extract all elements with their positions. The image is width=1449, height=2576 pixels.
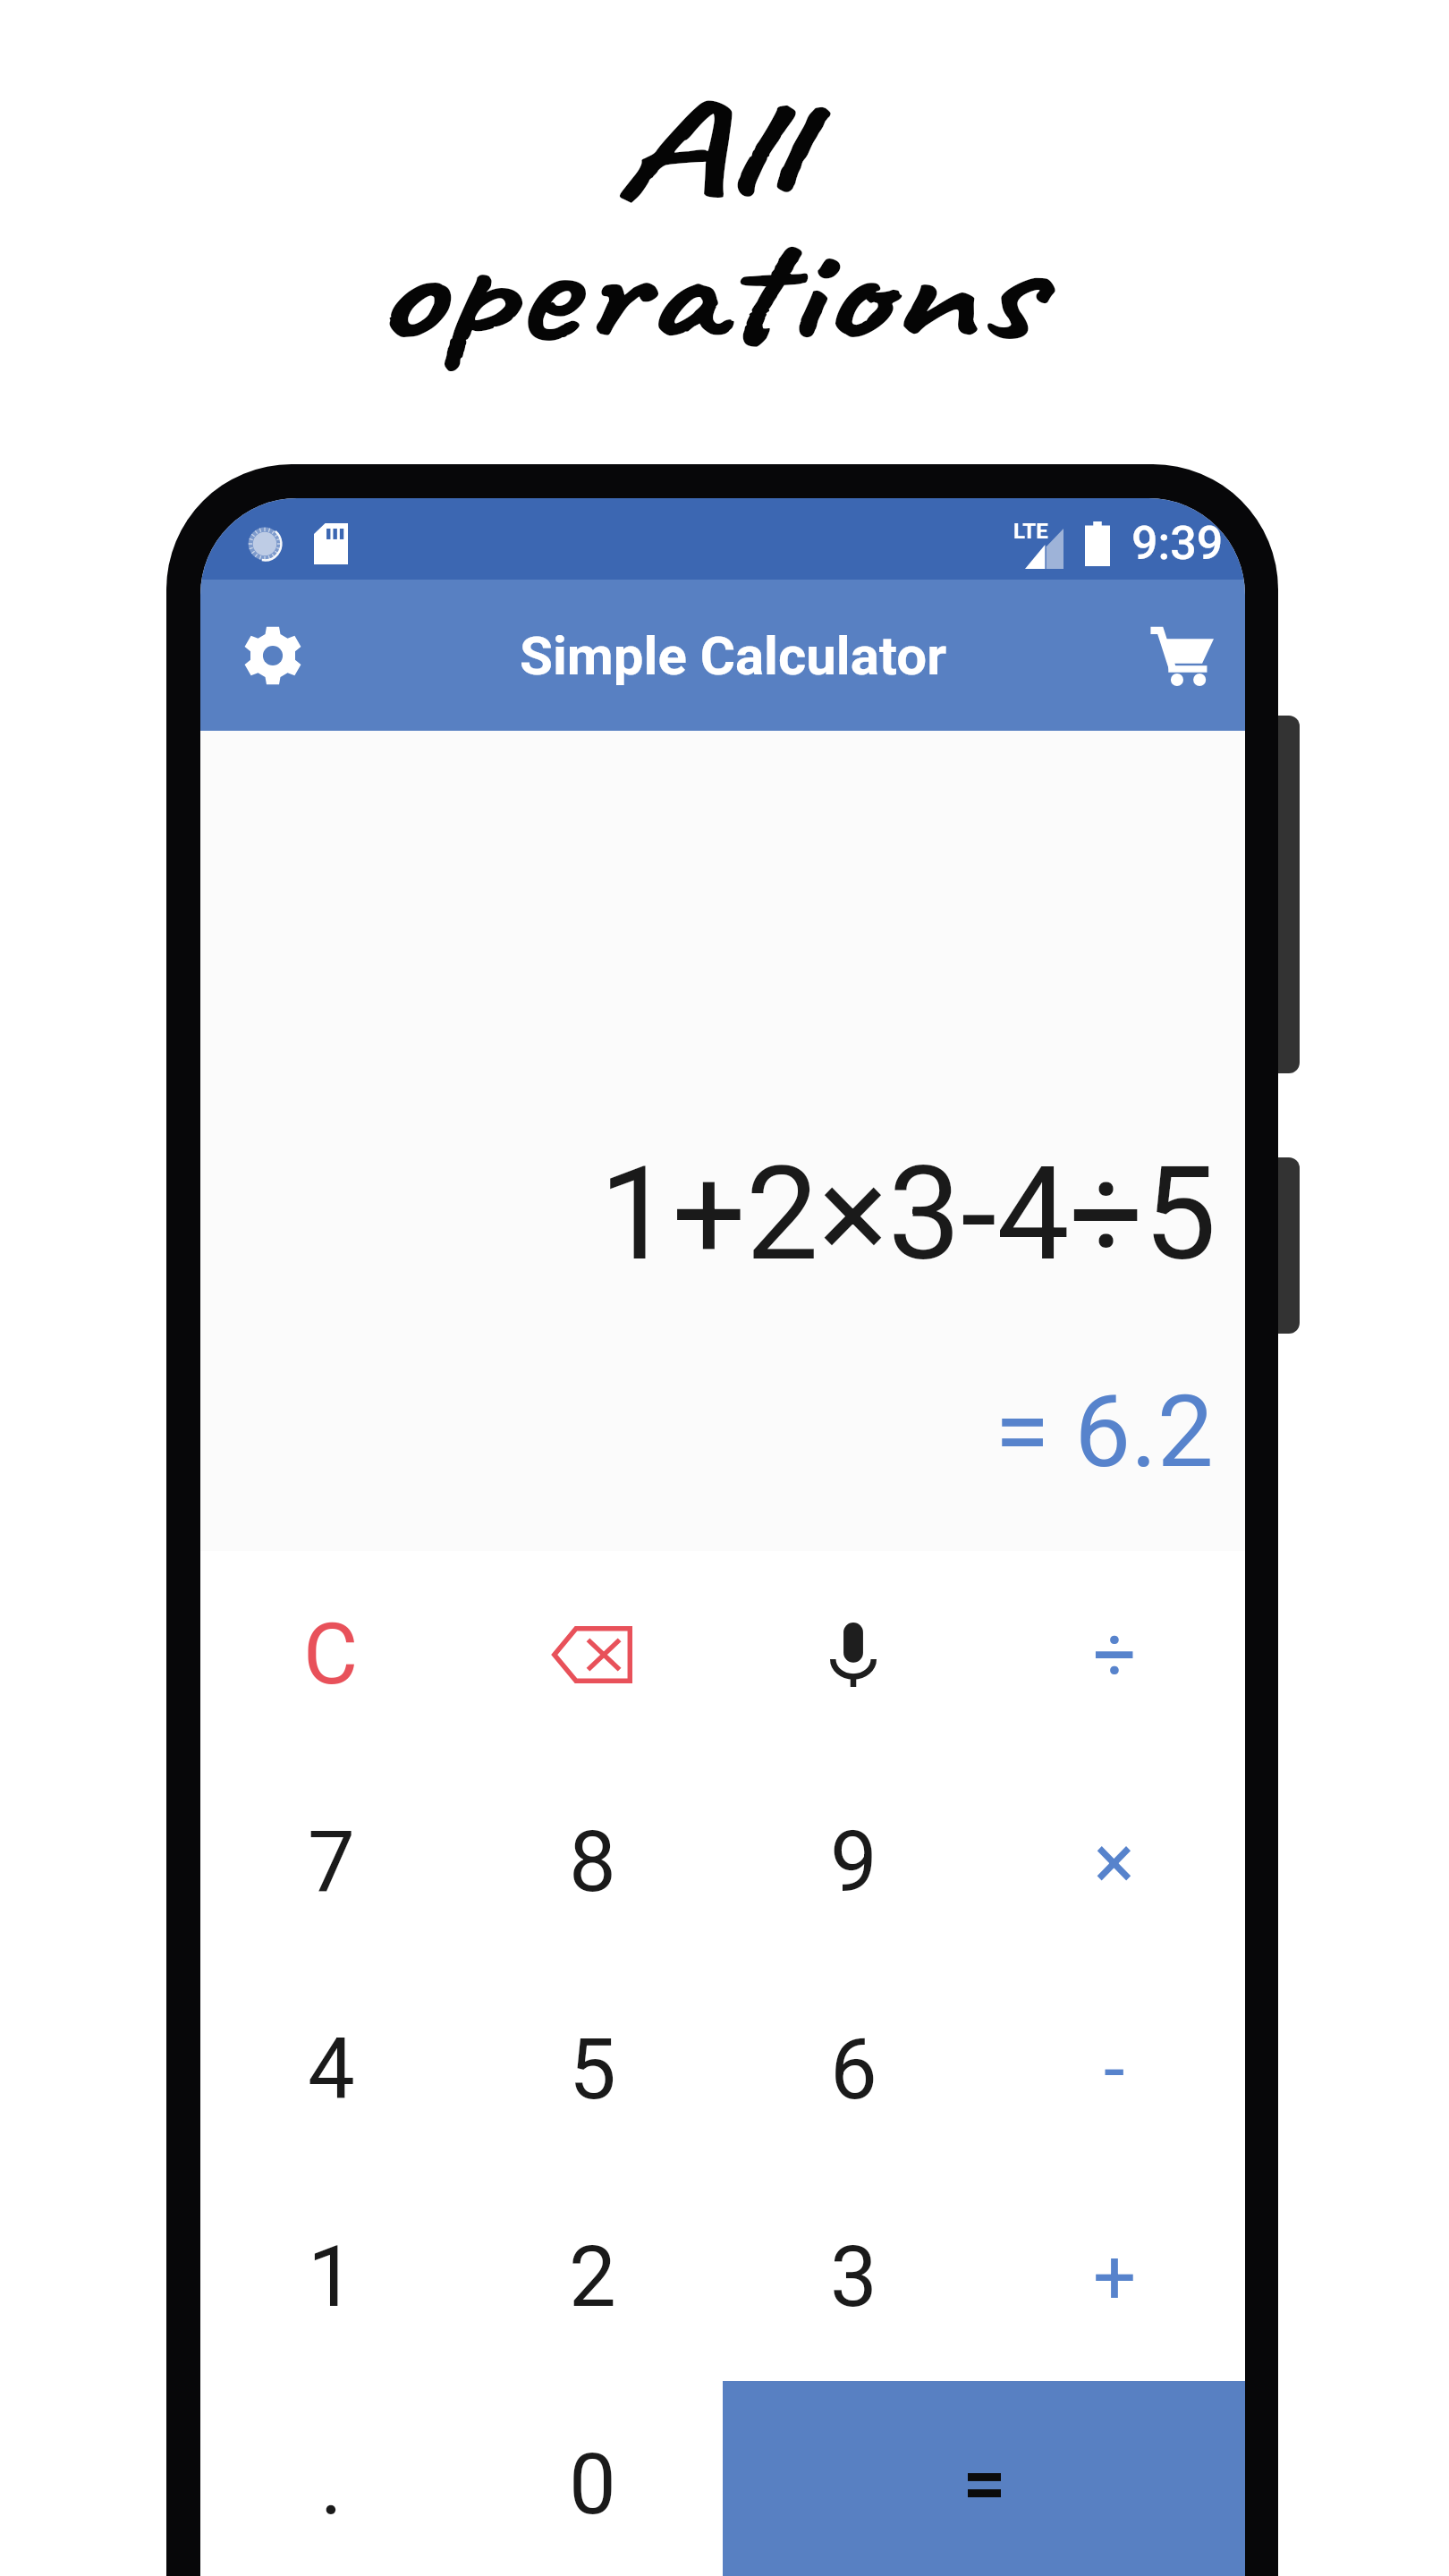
button[interactable]: Equals (723, 2381, 1245, 2576)
button[interactable]: 1 (200, 2173, 462, 2381)
staticText: 9 (830, 1813, 877, 1911)
staticText: 6 (830, 2021, 877, 2119)
button[interactable]: - (984, 1966, 1245, 2173)
button[interactable]: 8 (462, 1758, 723, 1966)
staticText: 5 (569, 2021, 616, 2119)
button[interactable]: Voice input (723, 1551, 984, 1758)
button[interactable]: Backspace (462, 1551, 723, 1758)
staticText: 1 (308, 2228, 355, 2326)
staticText: C (303, 1606, 359, 1704)
staticText: LTE (1013, 519, 1048, 544)
button[interactable]: 0 (462, 2381, 723, 2576)
button[interactable]: × (984, 1758, 1245, 1966)
staticText: 2 (569, 2228, 616, 2326)
button[interactable]: 9 (723, 1758, 984, 1966)
staticText: 4 (308, 2021, 355, 2119)
button[interactable]: 4 (200, 1966, 462, 2173)
staticText: = 6.2 (995, 1373, 1214, 1490)
button[interactable]: Shop (1132, 606, 1231, 705)
staticText: - (1104, 2025, 1125, 2114)
staticText: Simple Calculator (520, 624, 947, 687)
staticText: operations (372, 199, 1039, 381)
staticText: + (1093, 2233, 1137, 2322)
button[interactable]: 7 (200, 1758, 462, 1966)
button[interactable]: 5 (462, 1966, 723, 2173)
button[interactable]: 3 (723, 2173, 984, 2381)
button[interactable]: . (200, 2381, 462, 2576)
staticText: 8 (569, 1813, 616, 1911)
button[interactable]: 6 (723, 1966, 984, 2173)
staticText: . (320, 2436, 343, 2534)
staticText: 9:39 (1131, 516, 1224, 571)
button[interactable]: 2 (462, 2173, 723, 2381)
button[interactable]: + (984, 2173, 1245, 2381)
staticText: All (611, 64, 795, 236)
staticText: 7 (308, 1813, 355, 1911)
staticText: ÷ (1093, 1610, 1137, 1699)
staticText: 1+2×3-4÷5 (599, 1138, 1217, 1290)
staticText: 0 (569, 2436, 616, 2534)
button[interactable]: ÷ (984, 1551, 1245, 1758)
button[interactable]: C (200, 1551, 462, 1758)
staticText: 3 (830, 2228, 877, 2326)
staticText: × (1094, 1818, 1135, 1907)
button[interactable]: Settings (224, 606, 322, 705)
